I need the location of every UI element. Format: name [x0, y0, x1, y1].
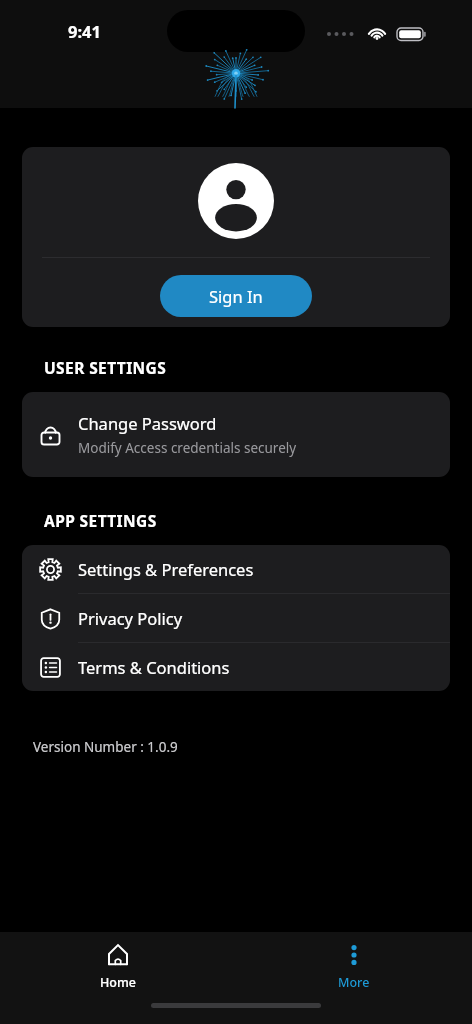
button[interactable]: Sign In [160, 275, 312, 317]
button[interactable]: Change Password [22, 392, 450, 477]
staticText: Privacy Policy [78, 607, 183, 629]
button[interactable]: Terms & Conditions [22, 643, 450, 691]
other: Profile avatar [198, 163, 274, 239]
button[interactable]: More [308, 932, 400, 994]
staticText: Terms & Conditions [78, 656, 230, 678]
staticText: Version Number : 1.0.9 [33, 738, 178, 756]
staticText: APP SETTINGS [44, 510, 157, 531]
staticText: Home [100, 974, 137, 991]
staticText: Change Password [78, 412, 217, 434]
button[interactable]: Settings & Preferences [22, 545, 450, 593]
staticText: Sign In [209, 285, 263, 307]
button[interactable]: Privacy Policy [22, 594, 450, 642]
staticText: 9:41 [68, 20, 101, 42]
staticText: More [338, 974, 370, 991]
staticText: Modify Access credentials securely [78, 439, 297, 457]
staticText: USER SETTINGS [44, 357, 167, 378]
button[interactable]: Home [72, 932, 164, 994]
staticText: Settings & Preferences [78, 558, 254, 580]
